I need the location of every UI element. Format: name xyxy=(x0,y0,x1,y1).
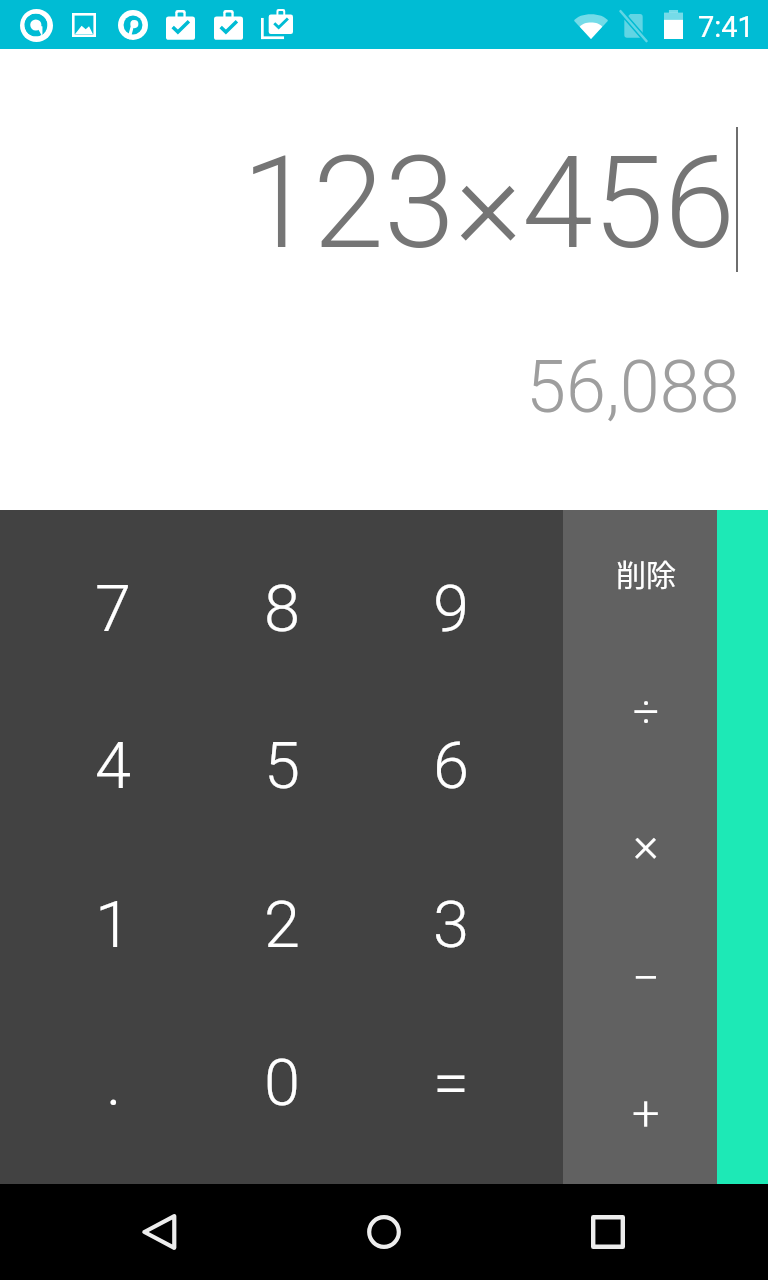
staticText: 4 xyxy=(95,728,132,804)
button[interactable]: + xyxy=(563,1049,717,1184)
staticText: 3 xyxy=(433,887,470,963)
staticText: 6 xyxy=(433,728,470,804)
staticText: . xyxy=(106,1045,122,1121)
button[interactable]: Calculator display xyxy=(0,49,768,510)
button[interactable]: Back xyxy=(112,1184,208,1280)
button[interactable]: ÷ xyxy=(563,644,717,779)
staticText: 9 xyxy=(433,571,470,647)
staticText: 123×456 xyxy=(242,128,735,278)
button[interactable]: 削除 xyxy=(563,510,717,644)
staticText: × xyxy=(633,816,659,873)
staticText: 1 xyxy=(95,887,132,963)
button[interactable]: 3 xyxy=(375,846,563,1015)
button[interactable]: 9 xyxy=(375,510,563,678)
staticText: − xyxy=(632,950,660,1007)
staticText: 7:41 xyxy=(698,10,754,44)
staticText: = xyxy=(433,1045,469,1121)
staticText: 0 xyxy=(264,1045,301,1121)
button[interactable]: 7 xyxy=(0,510,187,678)
staticText: + xyxy=(632,1085,660,1142)
button[interactable]: 6 xyxy=(375,678,563,846)
button[interactable]: 8 xyxy=(187,510,375,678)
button[interactable]: 1 xyxy=(0,846,187,1015)
staticText: 56,088 xyxy=(526,345,740,429)
button[interactable]: × xyxy=(563,779,717,914)
button[interactable]: 5 xyxy=(187,678,375,846)
button[interactable]: Home xyxy=(336,1184,432,1280)
staticText: 7 xyxy=(95,571,132,647)
button[interactable]: 2 xyxy=(187,846,375,1015)
staticText: 2 xyxy=(264,887,301,963)
staticText: 8 xyxy=(264,571,301,647)
staticText: 5 xyxy=(264,728,301,804)
button[interactable]: = xyxy=(375,1015,563,1184)
button[interactable]: . xyxy=(0,1015,187,1184)
button[interactable]: 4 xyxy=(0,678,187,846)
button[interactable]: 0 xyxy=(187,1015,375,1184)
staticText: 削除 xyxy=(616,551,676,594)
button[interactable]: − xyxy=(563,914,717,1049)
button[interactable]: Recent apps xyxy=(560,1184,656,1280)
staticText: ÷ xyxy=(633,685,660,739)
